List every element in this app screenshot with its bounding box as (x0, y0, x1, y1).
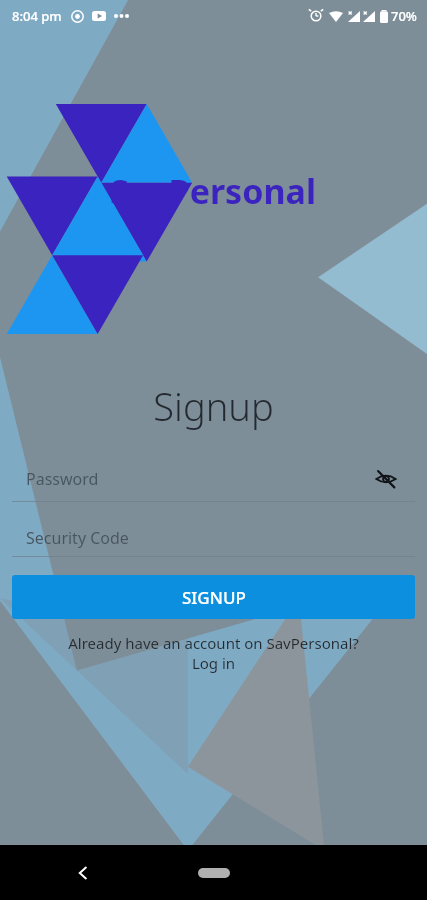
staticText: SavPersonal (110, 168, 317, 214)
button[interactable]: Show password (369, 462, 403, 496)
button[interactable]: Already have an account on SavPersonal? … (12, 633, 415, 673)
staticText: SIGNUP (182, 586, 246, 609)
staticText: Signup (153, 380, 274, 432)
staticText: 70% (391, 7, 417, 25)
button[interactable]: Back (62, 852, 104, 894)
button[interactable]: Home (184, 856, 244, 890)
staticText: 8:04 pm (12, 7, 62, 25)
button[interactable]: Security Code (12, 520, 415, 556)
staticText: Security Code (26, 527, 129, 549)
button[interactable]: SIGNUP (12, 575, 415, 619)
staticText: Password (26, 468, 99, 490)
button[interactable]: Password (12, 456, 415, 501)
staticText: Already have an account on SavPersonal? … (68, 633, 359, 673)
